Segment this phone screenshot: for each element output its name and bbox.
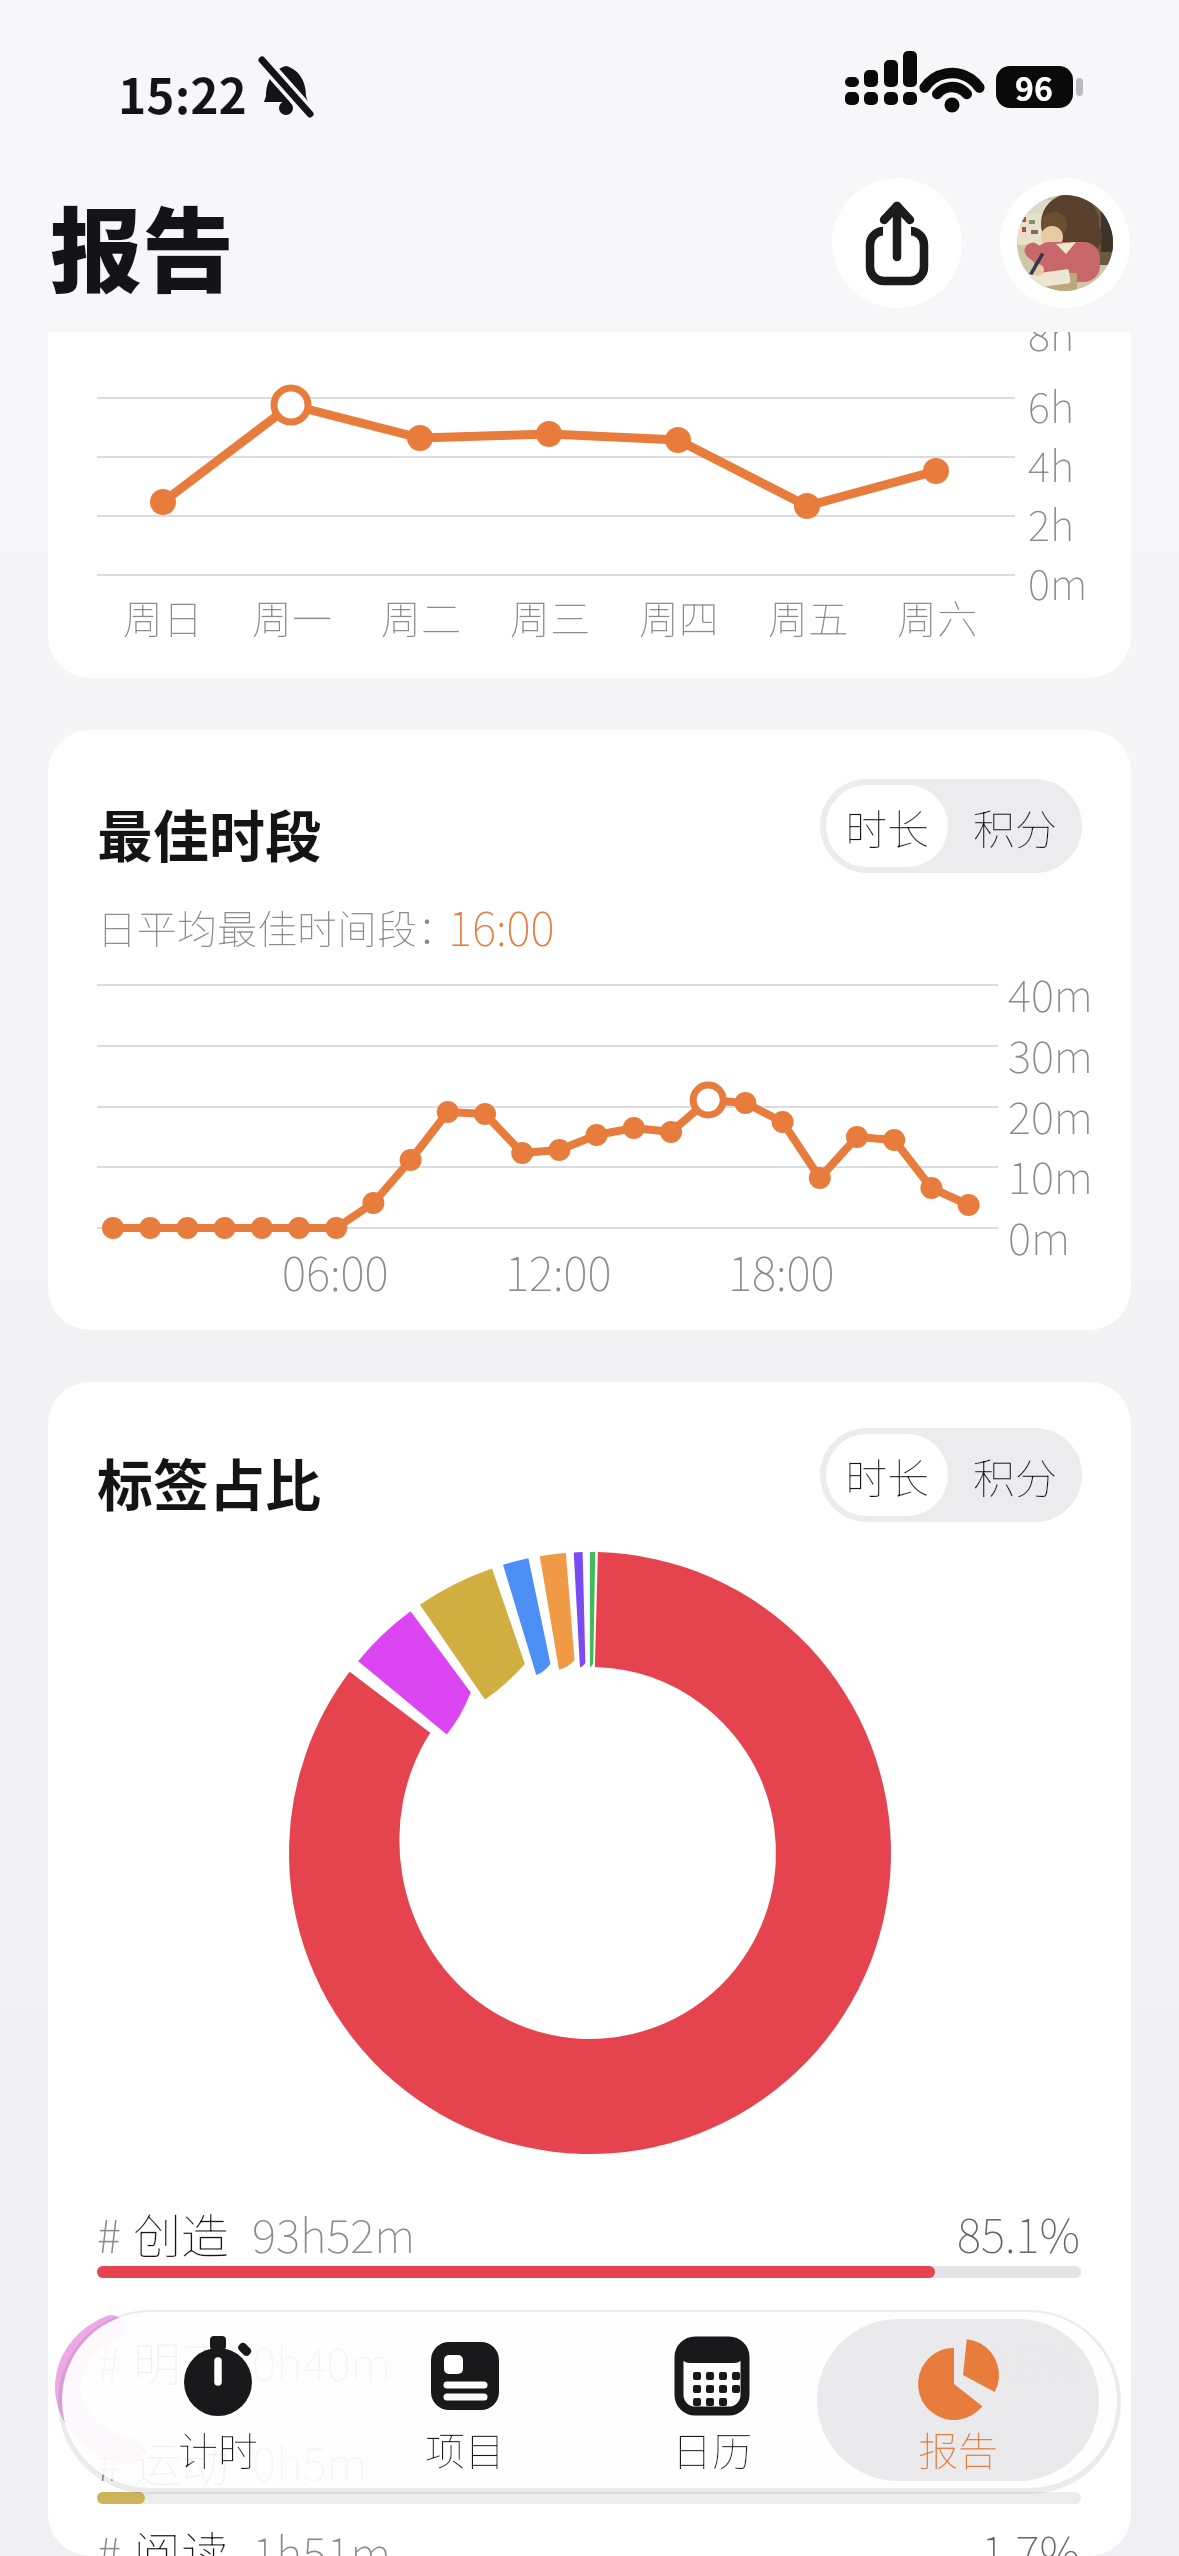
staticText: 周日 (123, 588, 203, 646)
staticText: 0m (1028, 551, 1088, 612)
staticText: 报告 (918, 2420, 998, 2478)
button[interactable] (832, 178, 962, 308)
staticText: 6h (1028, 374, 1075, 435)
staticText: 计时 (178, 2420, 258, 2478)
staticText: 0m (1008, 1204, 1071, 1268)
staticText: 40m (1008, 961, 1093, 1025)
staticText: 85.1% (957, 2200, 1081, 2267)
button[interactable]: 时长 (826, 1434, 948, 1516)
staticText: 周六 (897, 588, 977, 646)
staticText: 4h (1028, 433, 1075, 494)
staticText: 06:00 (282, 1238, 389, 1305)
staticText: 8h (1028, 302, 1075, 363)
staticText: 周一 (252, 588, 332, 646)
staticText: 1h51m (252, 2518, 392, 2556)
staticText: 周五 (768, 588, 848, 646)
staticText: 明天 (133, 2326, 230, 2396)
staticText: 0h5m (252, 2428, 368, 2495)
staticText: 18:00 (728, 1238, 835, 1305)
staticText: # (97, 2428, 121, 2495)
staticText: 创造 (133, 2198, 230, 2268)
staticText: 时长 (845, 1445, 930, 1506)
staticText: 日平均最佳时间段： (97, 898, 457, 956)
button[interactable] (122, 2320, 314, 2480)
staticText: 阅读 (133, 2516, 230, 2556)
staticText: 积分 (973, 1445, 1058, 1506)
staticText: # (97, 2328, 121, 2395)
staticText: 周二 (381, 588, 461, 646)
button[interactable] (616, 2320, 808, 2480)
staticText: # (97, 2200, 121, 2267)
staticText: 93h52m (252, 2200, 416, 2267)
staticText: 16:00 (448, 893, 555, 960)
button[interactable] (369, 2320, 561, 2480)
staticText: 15:22 (118, 58, 247, 128)
staticText: 运动 (133, 2426, 230, 2496)
staticText: 周四 (639, 588, 719, 646)
staticText: 1.7% (981, 2518, 1081, 2556)
staticText: 10m (1008, 1143, 1093, 1207)
staticText: 30m (1008, 1022, 1093, 1086)
button[interactable] (97, 2196, 1081, 2296)
staticText: 96 (1015, 64, 1053, 110)
button[interactable]: 时长 (826, 785, 948, 867)
staticText: 12:00 (505, 1238, 612, 1305)
staticText: # (97, 2518, 121, 2556)
button[interactable]: 积分 (954, 785, 1076, 867)
staticText: 周三 (510, 588, 590, 646)
staticText: 日历 (672, 2420, 752, 2478)
staticText: 时长 (845, 796, 930, 857)
staticText: 积分 (973, 796, 1058, 857)
staticText: 20m (1008, 1083, 1093, 1147)
staticText: 标签占比 (97, 1441, 321, 1522)
staticText: 2h (1028, 492, 1075, 553)
staticText: 最佳时段 (97, 792, 321, 873)
staticText: 0.6% (981, 2328, 1081, 2395)
staticText: 项目 (425, 2420, 505, 2478)
button[interactable]: 积分 (954, 1434, 1076, 1516)
staticText: 报告 (50, 178, 235, 311)
button[interactable] (1000, 178, 1130, 308)
button[interactable] (862, 2320, 1054, 2480)
